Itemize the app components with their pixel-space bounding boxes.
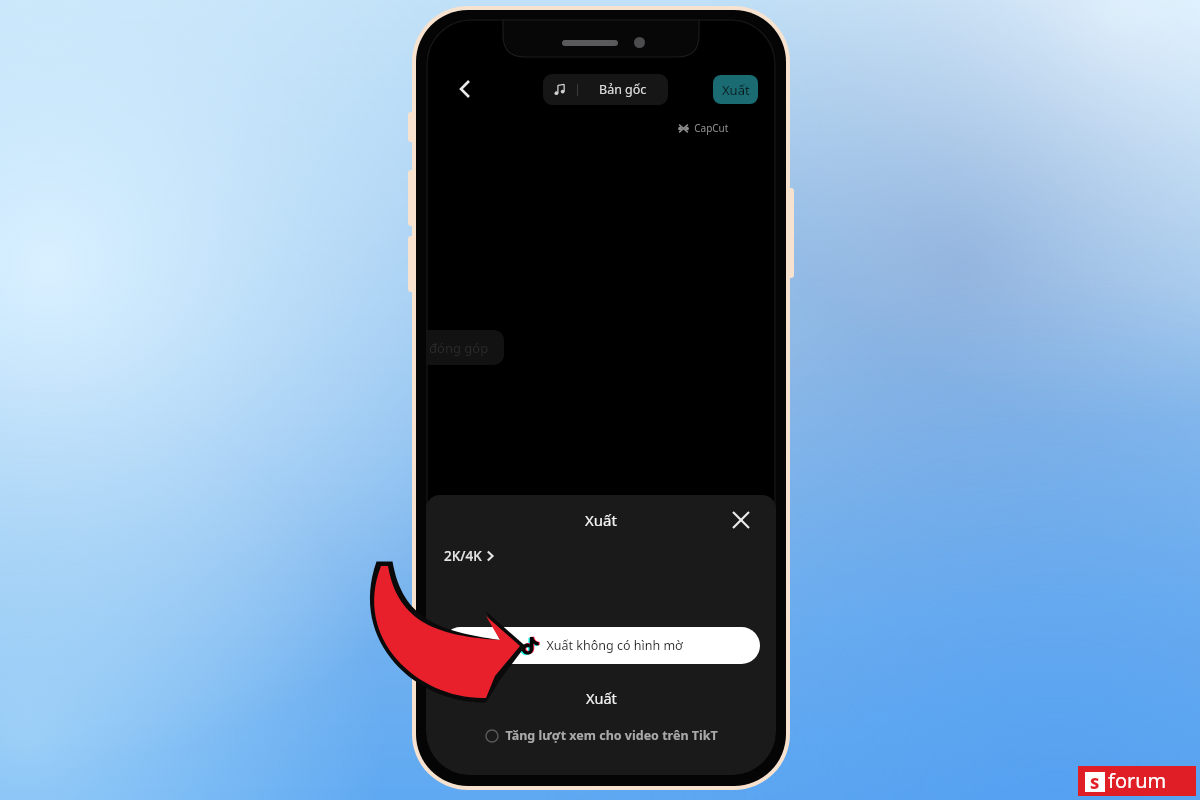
staticText: Bản gốc <box>599 81 647 98</box>
staticText: đóng góp <box>429 339 489 357</box>
button[interactable]: Xuất <box>713 75 758 104</box>
button[interactable]: Tăng lượt xem cho video trên TikT <box>485 727 718 744</box>
staticText: Xuất <box>722 81 750 99</box>
staticText: CapCut <box>689 121 729 135</box>
staticText: forum <box>1108 767 1167 794</box>
staticText: Xuất <box>585 510 617 530</box>
button[interactable]: Xuất không có hình mờ <box>442 627 760 664</box>
staticText: Tăng lượt xem cho video trên TikT <box>499 727 718 744</box>
staticText: Xuất <box>586 688 617 708</box>
staticText: Xuất không có hình mờ <box>540 637 683 654</box>
button[interactable]: Back <box>448 72 482 106</box>
button[interactable]: Close <box>724 503 758 537</box>
button[interactable]: 2K/4K <box>444 547 498 565</box>
staticText: 2K/4K <box>444 547 482 565</box>
staticText: S <box>1090 772 1100 792</box>
button[interactable]: Bản gốc <box>543 74 668 105</box>
button[interactable]: Xuất <box>426 678 776 718</box>
